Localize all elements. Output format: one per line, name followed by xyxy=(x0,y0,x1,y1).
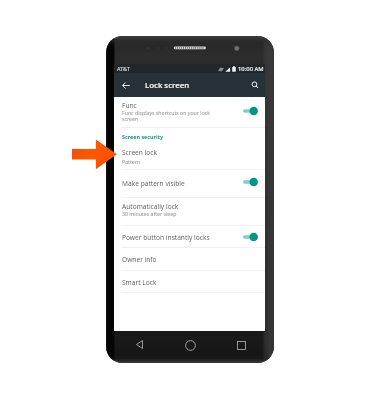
staticText: 10:00 AM xyxy=(238,65,264,73)
staticText: Screen lock xyxy=(122,148,157,157)
button[interactable] xyxy=(114,225,265,247)
staticText: Pattern xyxy=(122,158,257,165)
staticText: Make pattern visible xyxy=(122,179,185,188)
staticText: Func xyxy=(122,101,137,110)
button[interactable] xyxy=(114,247,265,270)
button[interactable]: Toggle setting xyxy=(239,230,261,244)
button[interactable] xyxy=(114,271,265,293)
button[interactable] xyxy=(114,144,265,170)
button[interactable]: Search xyxy=(248,78,262,92)
staticText: Screen security xyxy=(122,133,164,140)
button[interactable]: Navigate up xyxy=(118,77,134,93)
staticText: Owner info xyxy=(122,255,157,264)
staticText: Automatically lock xyxy=(122,202,179,211)
staticText: Power button instantly locks xyxy=(122,233,210,242)
button[interactable]: Toggle setting xyxy=(239,175,261,189)
button[interactable]: Home xyxy=(179,334,201,356)
button[interactable]: Recent apps xyxy=(230,334,252,356)
staticText: Smart Lock xyxy=(122,278,157,287)
staticText: Func displays shortcuts on your lock scr… xyxy=(122,109,218,123)
button[interactable] xyxy=(114,169,265,197)
staticText: AT&T xyxy=(117,65,130,72)
button[interactable] xyxy=(114,97,265,127)
button[interactable]: Toggle setting xyxy=(239,104,261,118)
staticText: 30 minutes after sleep xyxy=(122,210,257,217)
staticText: Lock screen xyxy=(145,80,190,91)
button[interactable]: Back xyxy=(128,333,150,355)
button[interactable] xyxy=(114,197,265,225)
